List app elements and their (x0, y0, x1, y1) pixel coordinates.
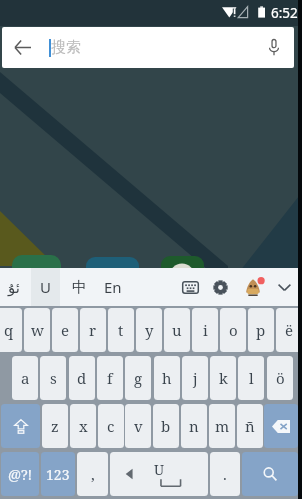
staticText: i (203, 320, 208, 340)
button[interactable]: a (12, 356, 38, 400)
staticText: x (79, 416, 88, 436)
button[interactable]: c (98, 404, 124, 448)
staticText: a (21, 368, 30, 388)
button[interactable]: f (97, 356, 123, 400)
button[interactable]: v (125, 404, 151, 448)
staticText: c (107, 416, 115, 436)
button[interactable]: r (80, 308, 106, 352)
staticText: l (249, 368, 254, 388)
button[interactable]: Search (242, 452, 298, 496)
button[interactable]: s (40, 356, 66, 400)
staticText: , (91, 464, 95, 484)
button[interactable]: j (182, 356, 208, 400)
button[interactable]: Backspace (264, 404, 298, 448)
staticText: 123 (46, 465, 70, 484)
staticText: U (154, 460, 165, 479)
button[interactable]: Space (110, 452, 208, 496)
staticText: p (256, 320, 266, 340)
button[interactable]: p (248, 308, 274, 352)
button[interactable]: Shift (1, 404, 40, 448)
staticText: k (219, 368, 228, 388)
button[interactable]: i (192, 308, 218, 352)
button[interactable]: b (153, 404, 179, 448)
staticText: t (118, 320, 124, 340)
staticText: n (189, 416, 199, 436)
button[interactable]: Emoji (241, 268, 265, 306)
button[interactable]: y (136, 308, 162, 352)
button[interactable]: k (210, 356, 236, 400)
staticText: q (4, 320, 14, 340)
button[interactable]: z (42, 404, 68, 448)
button[interactable]: x (70, 404, 96, 448)
button[interactable]: g (125, 356, 151, 400)
button[interactable]: Keyboard layout (178, 268, 202, 306)
staticText: 6:52 (271, 4, 298, 22)
staticText: j (193, 368, 198, 388)
staticText: U (40, 277, 51, 297)
button[interactable]: Back (2, 27, 43, 68)
staticText: b (161, 416, 171, 436)
button[interactable]: 123 (41, 452, 75, 496)
button[interactable]: t (108, 308, 134, 352)
staticText: h (162, 368, 172, 388)
button[interactable]: l (238, 356, 264, 400)
button[interactable]: Voice search (253, 27, 294, 68)
staticText: w (31, 320, 44, 340)
button[interactable]: Hide keyboard (273, 268, 296, 306)
staticText: e (61, 320, 70, 340)
button[interactable]: w (24, 308, 50, 352)
button[interactable]: h (154, 356, 180, 400)
button[interactable]: q (0, 308, 22, 352)
button[interactable]: n (181, 404, 207, 448)
button[interactable]: @?! (1, 452, 39, 496)
staticText: r (89, 320, 97, 340)
staticText: ö (276, 368, 285, 388)
button[interactable]: , (77, 452, 108, 496)
staticText: 中 (72, 278, 87, 297)
button[interactable]: ñ (237, 404, 263, 448)
staticText: ñ (245, 416, 255, 436)
staticText: . (223, 464, 227, 484)
button[interactable]: ö (267, 356, 293, 400)
staticText: g (134, 368, 143, 388)
staticText: f (107, 368, 113, 388)
button[interactable]: ë (276, 308, 302, 352)
button[interactable]: ئۇ (0, 268, 27, 306)
staticText: u (172, 320, 182, 340)
staticText: y (145, 320, 154, 340)
staticText: 搜索 (51, 38, 81, 57)
staticText: s (50, 368, 57, 388)
button[interactable]: o (220, 308, 246, 352)
button[interactable]: 中 (64, 268, 95, 306)
button[interactable]: u (164, 308, 190, 352)
staticText: z (51, 416, 59, 436)
staticText: En (104, 277, 122, 297)
staticText: v (134, 416, 143, 436)
button[interactable]: e (52, 308, 78, 352)
button[interactable]: m (209, 404, 235, 448)
button[interactable]: En (96, 268, 129, 306)
button[interactable]: d (69, 356, 95, 400)
staticText: o (229, 320, 238, 340)
button[interactable]: Settings (209, 268, 232, 306)
staticText: ئۇ (8, 279, 20, 296)
button[interactable]: U (31, 268, 60, 306)
button[interactable]: . (210, 452, 240, 496)
staticText: m (215, 416, 230, 436)
staticText: d (77, 368, 87, 388)
staticText: ë (285, 320, 294, 340)
staticText: @?! (8, 465, 33, 484)
